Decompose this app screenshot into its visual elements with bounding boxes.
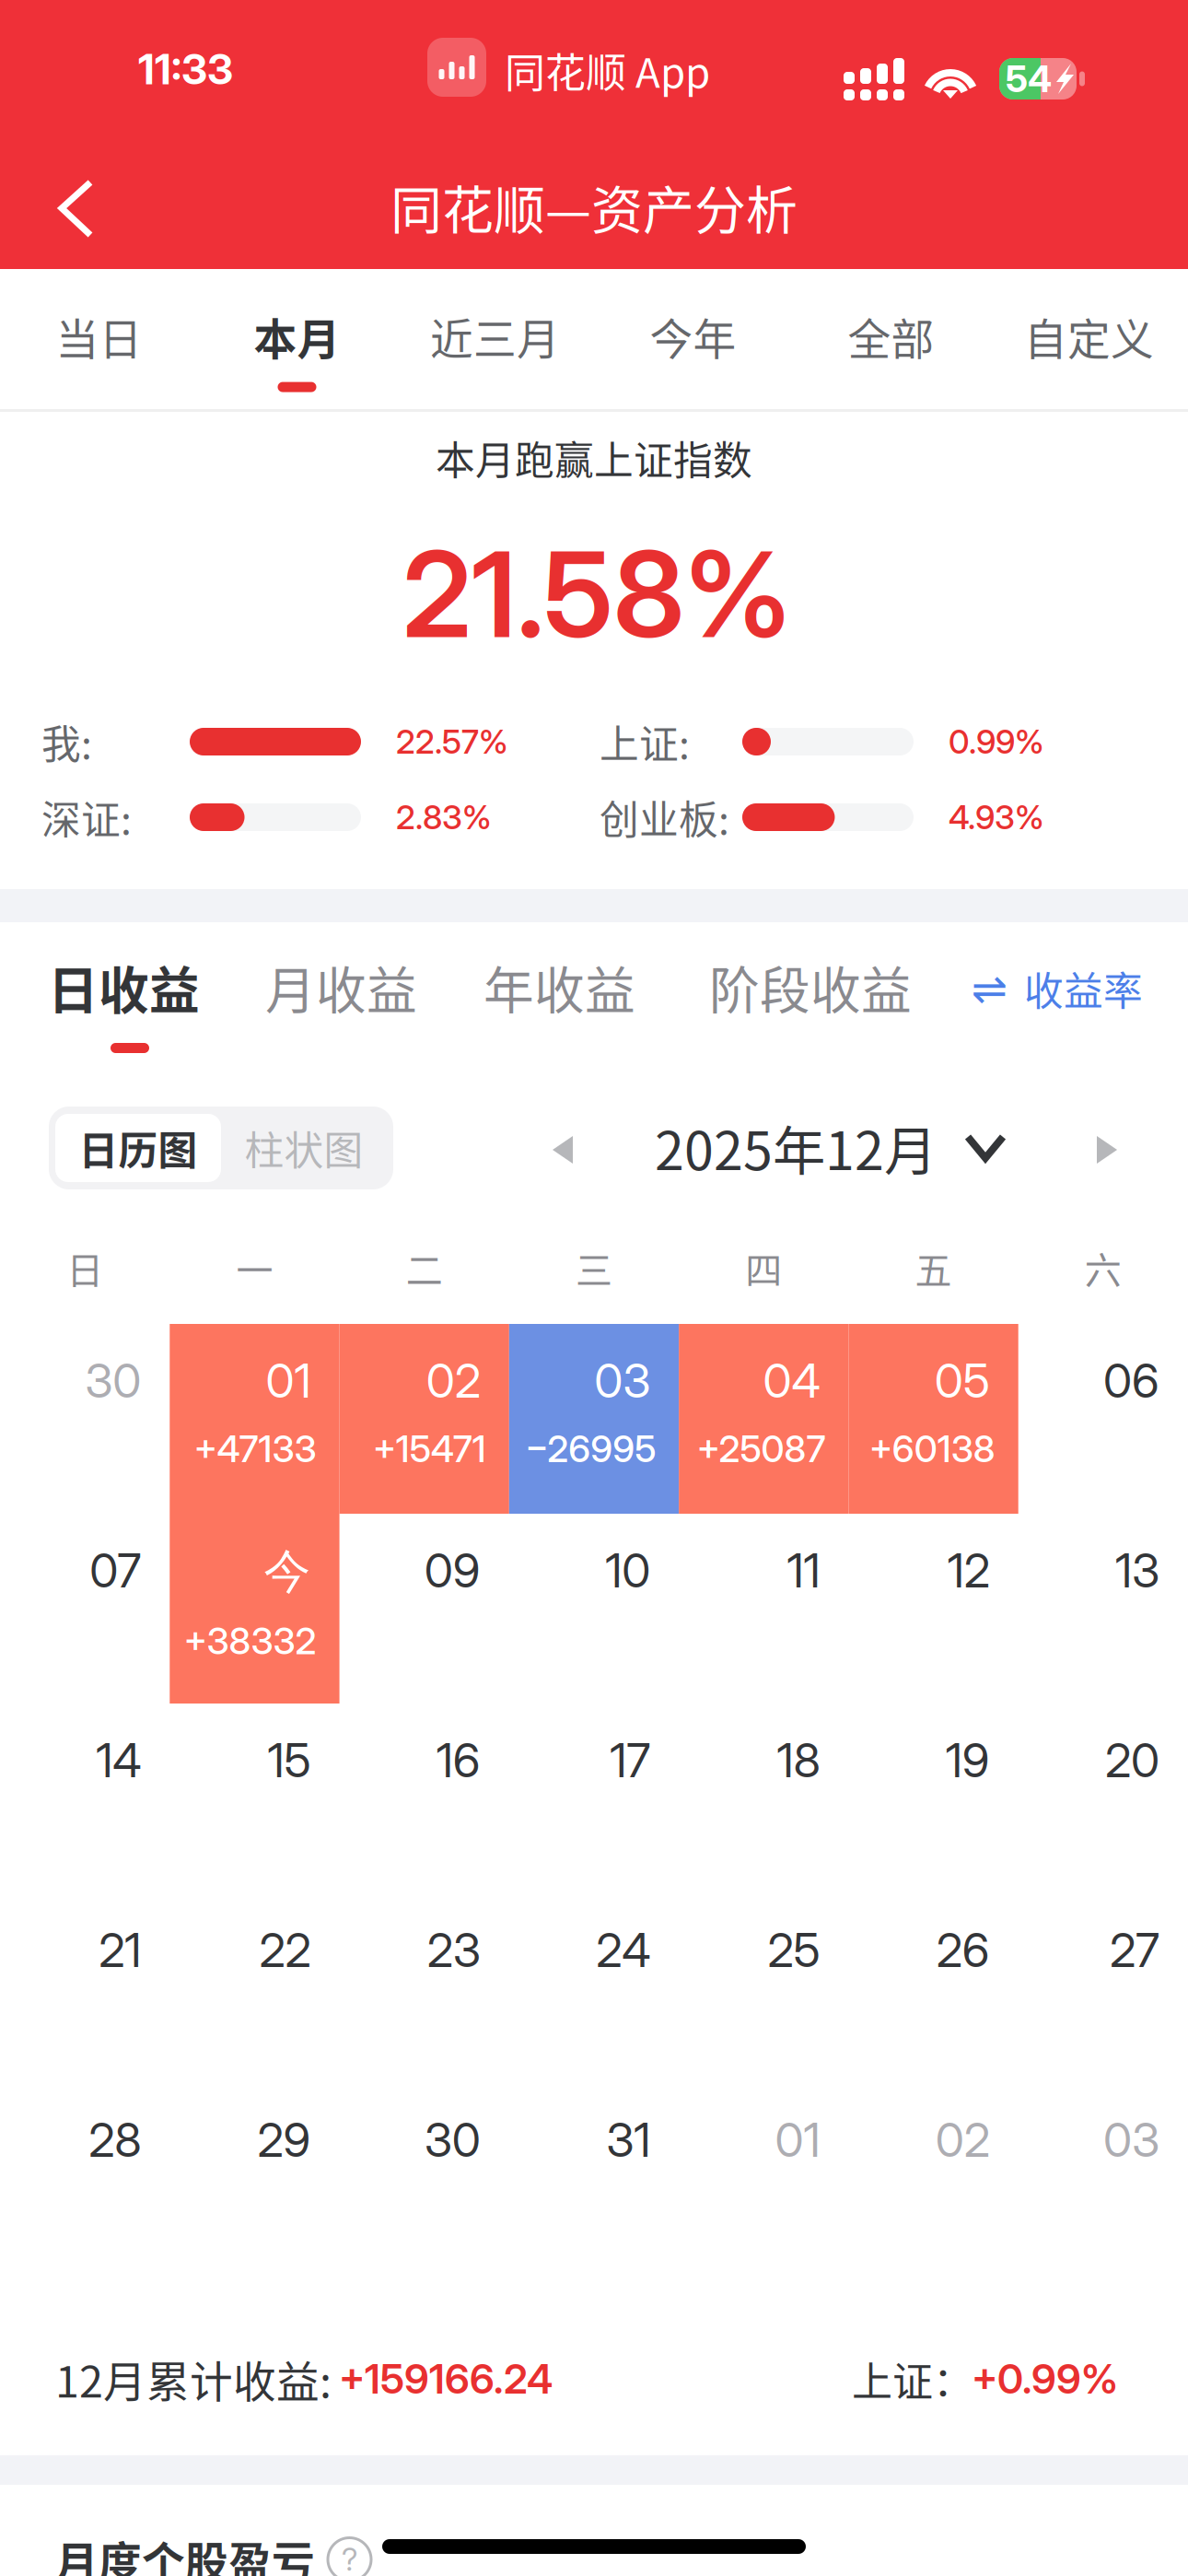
staticText: 09 [424, 1542, 481, 1599]
button[interactable]: 自定义 [990, 269, 1188, 411]
staticText: 15 [268, 1732, 311, 1789]
staticText: 一 [236, 1241, 273, 1294]
staticText: 02 [935, 2112, 990, 2168]
button[interactable]: 26 [849, 1893, 1018, 2083]
staticText: 12 [947, 1542, 990, 1599]
staticText: 16 [436, 1732, 481, 1789]
button[interactable]: 22 [170, 1893, 339, 2083]
staticText: 我: [41, 713, 92, 770]
staticText: 31 [606, 2112, 650, 2168]
button[interactable]: 06 [1018, 1324, 1188, 1514]
button[interactable]: 13 [1018, 1514, 1188, 1704]
button[interactable]: 今 [170, 1514, 339, 1704]
button[interactable]: 19 [849, 1704, 1018, 1893]
staticText: 04 [763, 1352, 820, 1409]
button[interactable]: 10 [509, 1514, 679, 1704]
button[interactable]: 本月 [198, 269, 396, 411]
button[interactable]: 31 [509, 2083, 679, 2273]
button[interactable]: 28 [0, 2083, 170, 2273]
staticText: 六 [1085, 1241, 1122, 1294]
staticText: 20 [1105, 1732, 1159, 1789]
staticText: 22 [259, 1922, 311, 1978]
staticText: 29 [257, 2112, 311, 2168]
button[interactable]: 近三月 [396, 269, 594, 411]
staticText: 03 [1103, 2112, 1159, 2168]
staticText: +38332 [184, 1619, 316, 1663]
staticText: 17 [610, 1732, 650, 1789]
button[interactable]: 29 [170, 2083, 339, 2273]
staticText: 四 [745, 1241, 782, 1294]
button[interactable]: 03 [1018, 2083, 1188, 2273]
staticText: 本月 [254, 305, 340, 367]
staticText: 03 [594, 1352, 650, 1409]
staticText: 五 [915, 1241, 952, 1294]
staticText: 上证: [600, 713, 690, 770]
button[interactable]: 25 [679, 1893, 849, 2083]
staticText: 26 [936, 1922, 990, 1978]
staticText: 27 [1110, 1922, 1159, 1978]
button[interactable]: 阶段收益 [0, 0, 1188, 2576]
staticText: 11 [787, 1542, 820, 1599]
button[interactable]: 今年 [594, 269, 792, 411]
staticText: 0.99% [949, 722, 1044, 762]
staticText: 21 [99, 1922, 141, 1978]
staticText: 收益率 [1024, 960, 1143, 1017]
button[interactable]: 27 [1018, 1893, 1188, 2083]
button[interactable]: 24 [509, 1893, 679, 2083]
button[interactable]: 2025年12月 [0, 0, 1188, 2576]
staticText: 创业板: [600, 789, 729, 846]
staticText: 上证： [852, 2349, 973, 2408]
staticText: 本月跑赢上证指数 [436, 429, 752, 486]
button[interactable]: 14 [0, 1704, 170, 1893]
button[interactable]: 18 [679, 1704, 849, 1893]
button[interactable]: 日历图 [49, 1107, 393, 1189]
button[interactable]: 04 [679, 1324, 849, 1514]
button[interactable]: 23 [339, 1893, 509, 2083]
button[interactable]: 01 [170, 1324, 339, 1514]
staticText: 月收益 [265, 950, 417, 1023]
button[interactable]: Back [0, 166, 166, 251]
button[interactable]: 03 [509, 1324, 679, 1514]
staticText: 柱状图 [245, 1119, 363, 1176]
staticText: 4.93% [949, 797, 1044, 837]
button[interactable]: 01 [679, 2083, 849, 2273]
button[interactable]: 09 [339, 1514, 509, 1704]
staticText: 二 [406, 1241, 443, 1294]
button[interactable]: 30 [0, 1324, 170, 1514]
staticText: 54 [1006, 56, 1052, 101]
button[interactable]: 月度个股盈亏 [0, 0, 1188, 2576]
button[interactable]: 月收益 [0, 0, 1188, 2576]
staticText: 30 [85, 1352, 141, 1409]
staticText: 日 [66, 1241, 103, 1294]
button[interactable]: Previous month [544, 1117, 588, 1177]
button[interactable]: Next month [1081, 1117, 1125, 1177]
staticText: 28 [89, 2112, 141, 2168]
staticText: ? [342, 2541, 357, 2576]
button[interactable]: 02 [339, 1324, 509, 1514]
button[interactable]: 16 [339, 1704, 509, 1893]
button[interactable]: 05 [849, 1324, 1018, 1514]
staticText: 24 [596, 1922, 650, 1978]
staticText: +47133 [194, 1426, 316, 1471]
button[interactable]: ⇌ [0, 0, 1188, 2576]
button[interactable]: 11 [679, 1514, 849, 1704]
button[interactable]: 17 [509, 1704, 679, 1893]
staticText: 全部 [848, 305, 934, 367]
button[interactable]: 12 [849, 1514, 1018, 1704]
button[interactable]: Choose month [962, 1117, 1008, 1176]
button[interactable]: 当日 [0, 269, 198, 411]
button[interactable]: 20 [1018, 1704, 1188, 1893]
staticText: 07 [90, 1542, 141, 1599]
staticText: 2.83% [396, 797, 492, 837]
button[interactable]: 21 [0, 1893, 170, 2083]
staticText: 02 [426, 1352, 481, 1409]
staticText: 18 [777, 1732, 820, 1789]
button[interactable]: 07 [0, 1514, 170, 1704]
button[interactable]: 30 [339, 2083, 509, 2273]
button[interactable]: 全部 [792, 269, 990, 411]
button[interactable]: 年收益 [0, 0, 1188, 2576]
button[interactable]: 日收益 [0, 0, 1188, 2576]
button[interactable]: 02 [849, 2083, 1018, 2273]
button[interactable]: 15 [170, 1704, 339, 1893]
staticText: +25087 [697, 1426, 826, 1471]
